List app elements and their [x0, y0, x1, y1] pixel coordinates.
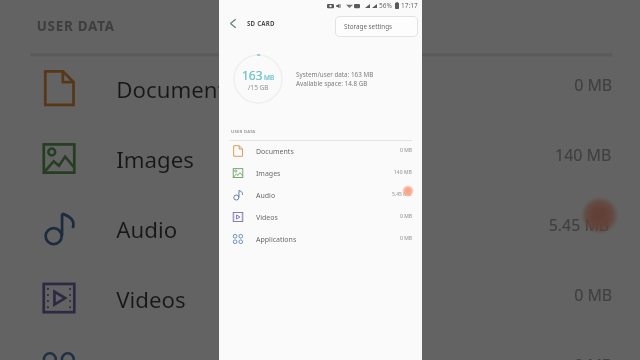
button[interactable]: Documents — [219, 141, 422, 163]
button[interactable]: Images — [0, 126, 640, 196]
staticText: 0 MB — [574, 75, 612, 98]
staticText: Images — [116, 145, 196, 177]
button[interactable]: Audio — [0, 196, 640, 266]
staticText: 17:17 — [401, 1, 418, 10]
button[interactable]: Applications — [0, 336, 640, 360]
staticText: Images — [256, 169, 281, 179]
staticText: Videos — [116, 285, 186, 317]
button[interactable]: Storage settings — [335, 16, 418, 37]
staticText: 0 MB — [400, 213, 412, 220]
staticText: 0 MB — [574, 285, 612, 308]
button[interactable]: Back — [219, 11, 247, 35]
staticText: Storage settings — [344, 22, 393, 31]
staticText: 56% — [379, 1, 392, 10]
button[interactable]: Audio — [219, 185, 422, 207]
staticText: /15 GB — [248, 83, 269, 92]
staticText: Applications — [116, 355, 247, 360]
staticText: Applications — [256, 235, 297, 245]
staticText: Videos — [256, 213, 278, 223]
staticText: 5.45 MB — [549, 215, 612, 238]
button[interactable]: Images — [219, 163, 422, 185]
staticText: Available space: 14.8 GB — [296, 79, 368, 88]
staticText: Documents — [256, 147, 294, 157]
staticText: 0 MB — [400, 235, 412, 242]
button[interactable]: Applications — [219, 229, 422, 251]
button[interactable]: Videos — [219, 207, 422, 229]
staticText: 140 MB — [394, 169, 412, 176]
staticText: Documents — [116, 75, 237, 107]
staticText: 140 MB — [555, 145, 612, 168]
staticText: USER DATA — [37, 18, 116, 37]
staticText: 0 MB — [574, 355, 612, 360]
staticText: 0 MB — [400, 147, 412, 154]
staticText: MB — [264, 73, 275, 82]
staticText: 5.45 MB — [392, 191, 412, 198]
staticText: USER DATA — [231, 129, 256, 135]
staticText: Audio — [256, 191, 276, 201]
button[interactable]: Documents — [0, 56, 640, 126]
staticText: SD CARD — [247, 19, 275, 27]
staticText: 163 — [242, 67, 263, 83]
staticText: System/user data: 163 MB — [296, 70, 374, 79]
button[interactable]: Videos — [0, 266, 640, 336]
staticText: Audio — [116, 215, 180, 247]
